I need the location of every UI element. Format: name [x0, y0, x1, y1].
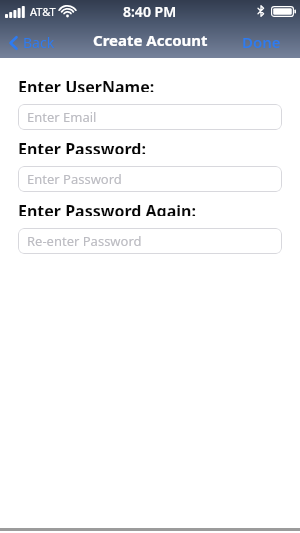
staticText: Enter UserName: [18, 76, 155, 92]
staticText: Re-enter Password [27, 232, 142, 250]
staticText: Create Account [93, 30, 208, 50]
button[interactable]: Re-enter Password [18, 228, 282, 254]
staticText: AT&T [30, 4, 56, 19]
staticText: 8:40 PM [123, 2, 177, 21]
staticText: Enter Password Again: [18, 200, 197, 216]
staticText: Enter Password [27, 170, 122, 188]
button[interactable]: Enter Email [18, 104, 282, 130]
button[interactable]: Done [242, 32, 281, 52]
staticText: Enter Password: [18, 138, 146, 154]
staticText: Back [23, 33, 55, 52]
button[interactable]: Enter Password [18, 166, 282, 192]
button[interactable]: Back [9, 33, 55, 52]
staticText: Enter Email [27, 108, 97, 126]
